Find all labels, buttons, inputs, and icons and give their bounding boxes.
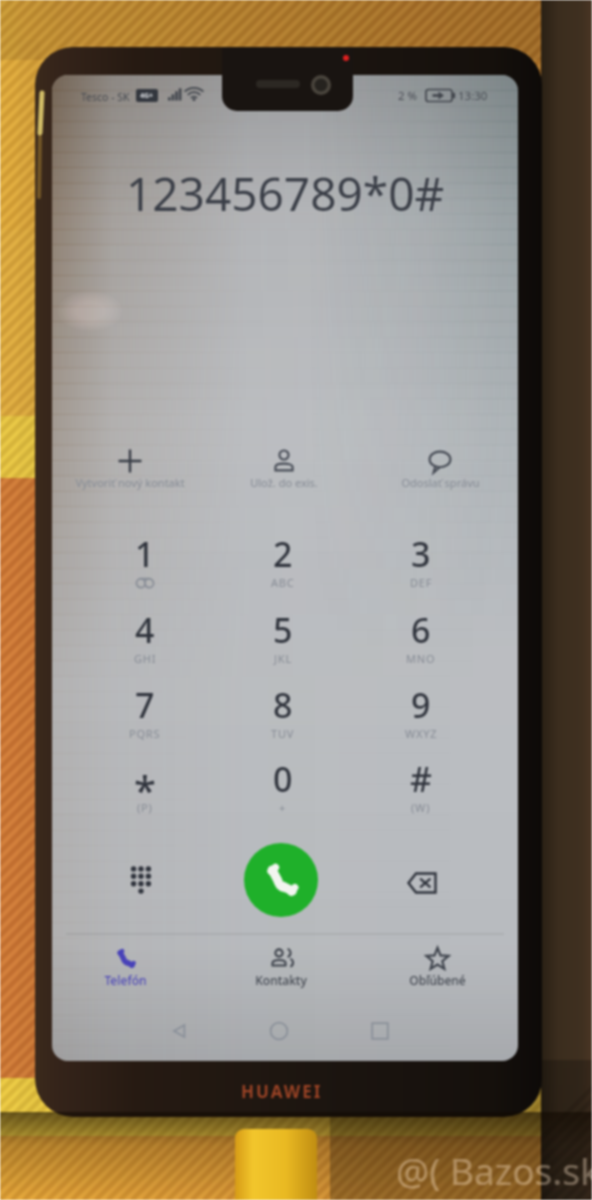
staticText: MNO (406, 651, 436, 666)
staticText: 8 (273, 682, 293, 722)
staticText: 123456789*0# (126, 162, 445, 218)
staticText: Odoslať správu (401, 475, 480, 490)
staticText: DEF (410, 575, 433, 590)
staticText: 2 % (398, 88, 418, 104)
staticText: 4 (135, 607, 155, 647)
staticText: Obľúbené (409, 972, 466, 988)
button[interactable]: Telefón (52, 946, 201, 1000)
button[interactable]: # (363, 756, 479, 822)
button[interactable]: Vytvoriť nový kontakt (66, 448, 194, 500)
button[interactable]: 6 (363, 607, 479, 673)
staticText: PQRS (129, 726, 161, 741)
staticText: 2 (273, 531, 293, 571)
button[interactable]: 7 (87, 682, 203, 748)
button[interactable]: 2 (225, 531, 341, 597)
button[interactable]: Kontakty (205, 946, 357, 1000)
staticText: TUV (271, 726, 295, 741)
staticText: JKL (274, 651, 292, 666)
staticText: @( Bazos.sk (396, 1145, 592, 1195)
button[interactable]: Odoslať správu (376, 448, 504, 500)
staticText: Telefón (104, 972, 147, 988)
staticText: 6 (411, 607, 431, 647)
button[interactable]: 8 (225, 682, 341, 748)
staticText: 3 (411, 531, 431, 571)
button[interactable]: Recents (355, 1011, 405, 1051)
staticText: Kontakty (255, 972, 307, 988)
staticText: (W) (411, 800, 431, 815)
staticText: Tesco - SK (81, 90, 130, 104)
button[interactable]: Obľúbené (361, 946, 513, 1000)
staticText: 1 (135, 531, 155, 571)
button[interactable]: 5 (225, 607, 341, 673)
staticText: HUAWEI (241, 1080, 323, 1103)
staticText: Ulož. do exis. (250, 475, 318, 490)
staticText: WXYZ (405, 726, 438, 741)
staticText: 9 (411, 682, 431, 722)
button[interactable]: Ulož. do exis. (220, 448, 348, 500)
staticText: 5 (273, 607, 293, 647)
button[interactable]: Home (254, 1011, 304, 1051)
staticText: ABC (271, 575, 295, 590)
staticText: GHI (134, 651, 157, 666)
staticText: Vytvoriť nový kontakt (75, 475, 185, 490)
staticText: + (279, 800, 287, 815)
button[interactable]: 0 (225, 756, 341, 822)
staticText: (P) (137, 800, 153, 815)
button[interactable]: 4 (87, 607, 203, 673)
button[interactable]: Keypad (111, 850, 171, 910)
button[interactable]: Call (244, 843, 318, 917)
button[interactable]: * (87, 756, 203, 822)
staticText: 7 (135, 682, 155, 722)
staticText: # (410, 756, 432, 796)
button[interactable]: Back (155, 1011, 205, 1051)
button[interactable]: 1 (87, 531, 203, 597)
button[interactable]: Backspace (392, 853, 452, 913)
staticText: 0 (273, 756, 293, 796)
button[interactable]: 9 (363, 682, 479, 748)
staticText: 4G+ (140, 91, 154, 101)
staticText: 13:30 (458, 88, 488, 104)
button[interactable]: 3 (363, 531, 479, 597)
staticText: * (134, 762, 156, 802)
